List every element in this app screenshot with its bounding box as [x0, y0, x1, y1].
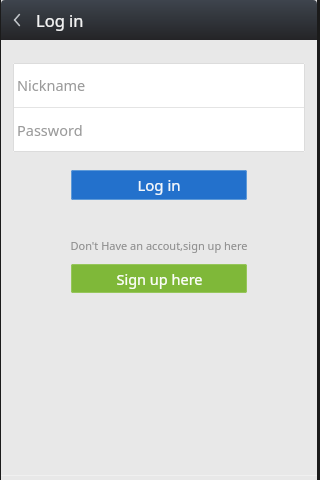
staticText: Log in [36, 9, 84, 31]
button[interactable]: Password [13, 108, 305, 152]
staticText: Sign up here [116, 269, 203, 289]
button[interactable]: Back [1, 0, 33, 40]
button[interactable]: Nickname [13, 63, 305, 107]
button[interactable]: Log in [71, 170, 247, 200]
button[interactable]: Don't Have an accout,sign up here [70, 238, 248, 253]
button[interactable]: Sign up here [71, 264, 247, 293]
staticText: Nickname [17, 75, 86, 95]
staticText: Log in [137, 175, 181, 195]
staticText: Don't Have an accout,sign up here [70, 238, 248, 253]
staticText: Password [17, 120, 83, 140]
